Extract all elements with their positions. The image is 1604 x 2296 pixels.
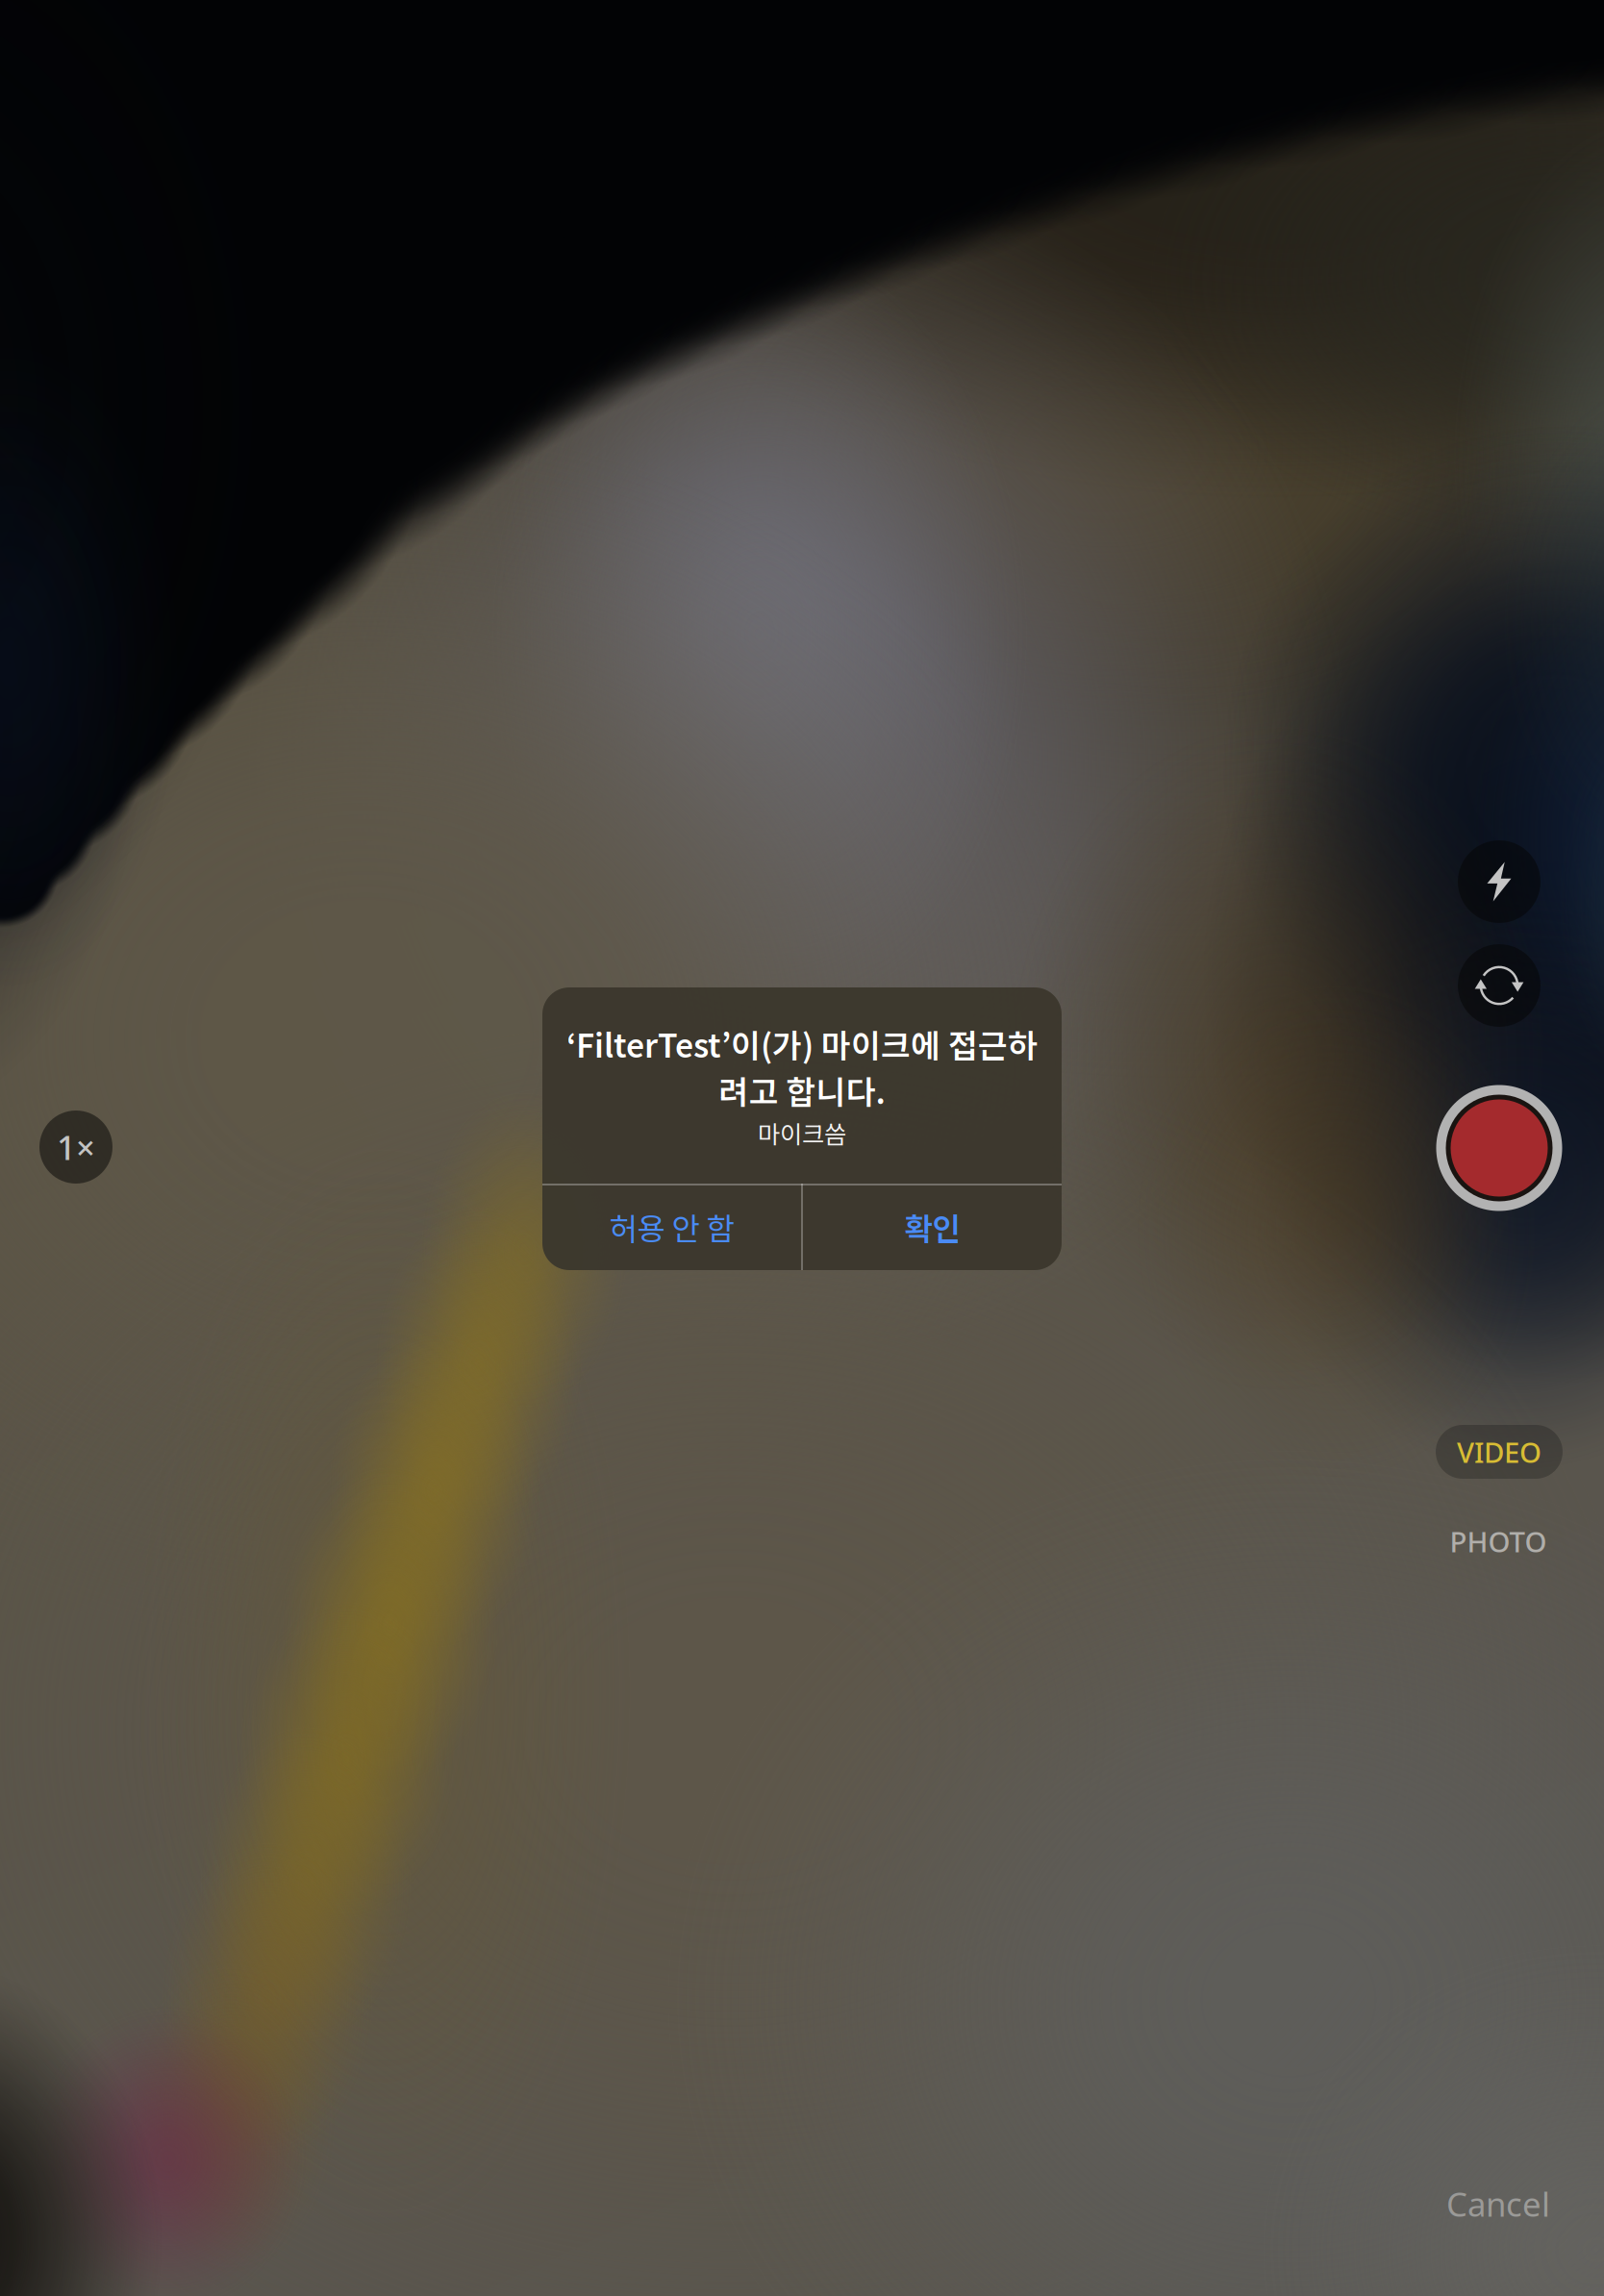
staticText: VIDEO (1457, 1433, 1541, 1471)
staticText: 1× (57, 1125, 95, 1169)
button[interactable]: Flash (1458, 840, 1541, 923)
button[interactable]: 허용 안 함 (542, 1184, 801, 1270)
staticText: ‘FilterTest’이(가) 마이크에 접근하 (566, 1021, 1038, 1067)
staticText: 확인 (904, 1205, 960, 1249)
staticText: 려고 합니다. (719, 1067, 885, 1113)
button[interactable]: Record (1436, 1085, 1562, 1211)
staticText: 마이크씀 (758, 1115, 846, 1150)
staticText: 허용 안 함 (609, 1205, 734, 1249)
button[interactable]: PHOTO (1421, 1514, 1575, 1568)
button[interactable]: 1× (39, 1111, 113, 1184)
button[interactable]: Switch camera (1458, 944, 1541, 1027)
button[interactable]: 확인 (803, 1184, 1062, 1270)
staticText: PHOTO (1450, 1522, 1547, 1560)
staticText: Cancel (1446, 2182, 1550, 2226)
button[interactable]: VIDEO (1436, 1425, 1563, 1479)
button[interactable]: Cancel (1402, 2175, 1594, 2233)
